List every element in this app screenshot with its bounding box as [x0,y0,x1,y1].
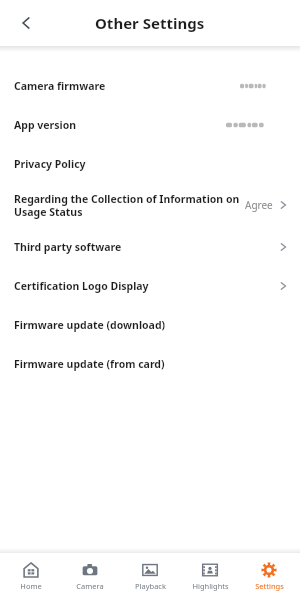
staticText: Regarding the Collection of Information … [14,192,245,219]
staticText: Home [20,581,42,591]
staticText: Other Settings [95,13,205,33]
staticText: Third party software [14,240,276,254]
staticText: Firmware update (from card) [14,357,276,371]
button[interactable]: Home [2,553,60,600]
button[interactable]: Firmware update (download) [0,305,300,344]
staticText: Camera firmware [14,79,240,93]
staticText: Agree [245,198,273,212]
button[interactable]: Camera firmware [0,66,300,105]
staticText: Privacy Policy [14,157,276,171]
button[interactable]: Back [6,3,46,43]
staticText: App version [14,118,226,132]
button[interactable]: Privacy Policy [0,144,300,183]
staticText: Highlights [192,581,229,591]
button[interactable]: Settings [240,553,298,600]
button[interactable]: Highlights [181,553,239,600]
button[interactable]: Camera [61,553,119,600]
button[interactable]: App version [0,105,300,144]
button[interactable]: Third party software [0,227,300,266]
staticText: Settings [255,581,284,591]
staticText: Firmware update (download) [14,318,276,332]
button[interactable]: Firmware update (from card) [0,344,300,383]
staticText: Certification Logo Display [14,279,276,293]
button[interactable]: Playback [121,553,179,600]
button[interactable]: Certification Logo Display [0,266,300,305]
staticText: Playback [135,581,166,591]
staticText: Camera [76,581,104,591]
button[interactable]: Regarding the Collection of Information … [0,183,300,227]
